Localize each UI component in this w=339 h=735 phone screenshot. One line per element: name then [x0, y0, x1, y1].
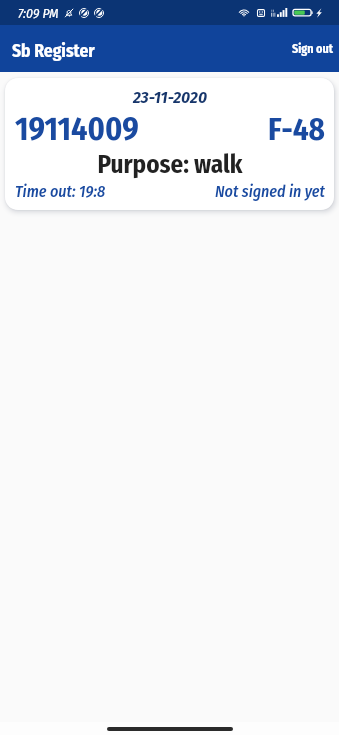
staticText: 19114009: [15, 110, 139, 148]
staticText: Not signed in yet: [215, 182, 325, 201]
staticText: 7:09 PM: [18, 5, 59, 21]
staticText: Sign out: [292, 42, 333, 56]
staticText: 23-11-2020: [15, 87, 325, 107]
button[interactable]: Sign out: [286, 30, 339, 68]
button[interactable]: 23-11-2020: [5, 78, 334, 210]
staticText: Sb Register: [12, 41, 95, 62]
staticText: Time out: 19:8: [15, 182, 106, 201]
staticText: F-48: [268, 111, 325, 148]
other: Home: [107, 727, 233, 731]
staticText: Purpose: walk: [15, 150, 325, 180]
